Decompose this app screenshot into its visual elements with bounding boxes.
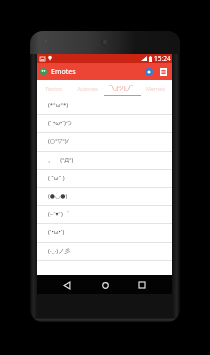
staticText: Autores [77, 85, 98, 92]
staticText: (*°ω°*) [48, 101, 69, 109]
button[interactable]: Autores [70, 80, 104, 96]
staticText: (´ •ω•`)つ [48, 119, 72, 127]
staticText: (○°▽°)/ [48, 137, 69, 145]
button[interactable]: (○°▽°)/ [37, 132, 172, 150]
button[interactable]: (´•ω•`) [37, 223, 172, 241]
button[interactable]: Random [143, 66, 155, 78]
button[interactable]: (´ •ω•`)つ [37, 114, 172, 132]
button[interactable]: (-_-)ノ彡 [37, 242, 172, 260]
staticText: (-_-)ノ彡 [48, 247, 71, 255]
button[interactable]: 。ゟ(°Д°)ゟ [37, 151, 172, 169]
button[interactable]: (*°ω°*) [37, 96, 172, 114]
staticText: 。ゟ(°Д°)ゟ [48, 156, 80, 164]
button[interactable]: List [157, 66, 169, 78]
button[interactable]: Back [59, 277, 75, 293]
staticText: ¯\_(ツ)_/¯ [109, 84, 133, 92]
staticText: ( ˇωˇ ) [48, 174, 65, 182]
staticText: Textos [45, 85, 62, 92]
staticText: (´•ω•`) [48, 228, 65, 236]
staticText: Memes [146, 85, 165, 92]
button[interactable]: ( ˇωˇ ) [37, 169, 172, 187]
button[interactable]: Textos [37, 80, 70, 96]
staticText: Emotes [51, 67, 76, 77]
staticText: (●◡●) [48, 192, 68, 200]
button[interactable]: (~˘▾˘)゜ [37, 205, 172, 223]
button[interactable]: ¯\_(ツ)_/¯ [104, 80, 138, 96]
staticText: (~˘▾˘)゜ [48, 210, 69, 218]
button[interactable]: Memes [138, 80, 172, 96]
staticText: 15:24 [154, 54, 171, 63]
button[interactable]: (●◡●) [37, 187, 172, 205]
button[interactable]: Home [97, 277, 113, 293]
button[interactable]: Recents [134, 277, 150, 293]
